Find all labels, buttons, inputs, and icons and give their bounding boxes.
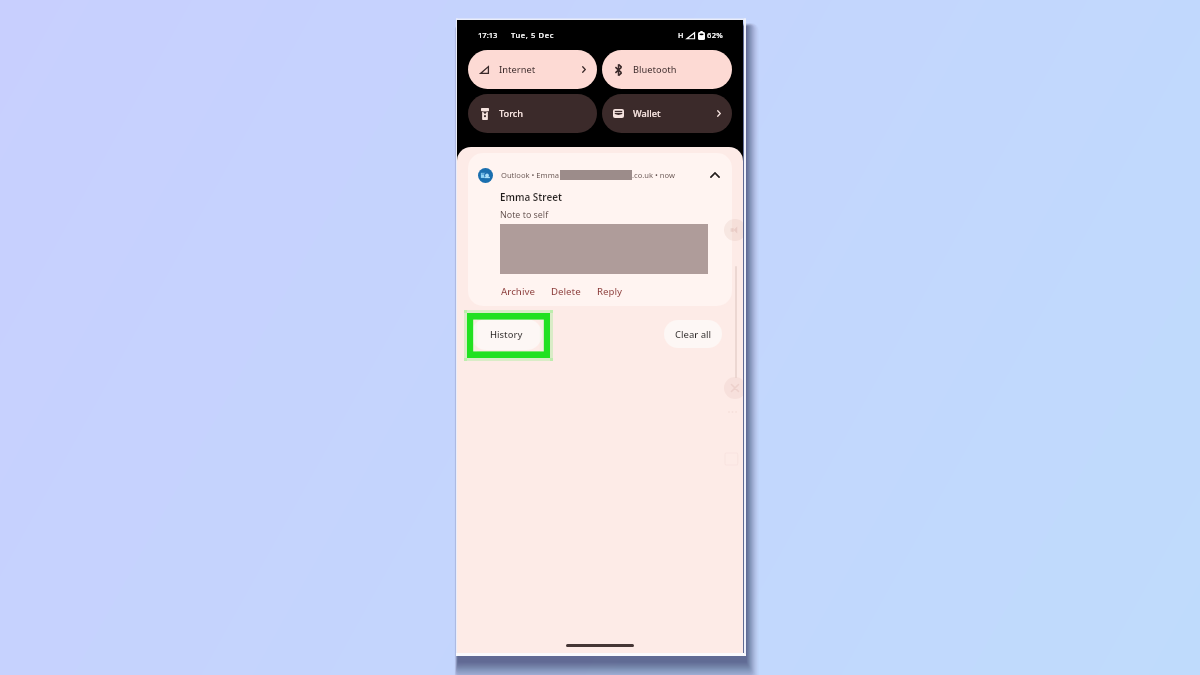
- button[interactable]: Delete: [550, 284, 582, 299]
- staticText: Emma Street: [500, 190, 563, 203]
- staticText: Reply: [597, 285, 623, 298]
- button[interactable]: Outlook • Emma: [468, 153, 732, 306]
- staticText: Tue, 5 Dec: [511, 30, 555, 40]
- button[interactable]: Internet: [468, 50, 597, 89]
- staticText: 17:13: [478, 30, 498, 40]
- staticText: Bluetooth: [633, 63, 677, 76]
- button[interactable]: Wallet: [602, 94, 732, 133]
- staticText: Note to self: [500, 208, 549, 220]
- staticText: H: [678, 30, 684, 40]
- button[interactable]: Collapse notification: [704, 164, 725, 185]
- button[interactable]: Archive: [500, 284, 537, 299]
- button[interactable]: Bluetooth: [602, 50, 732, 89]
- staticText: Archive: [501, 285, 536, 298]
- button[interactable]: History: [471, 319, 542, 350]
- staticText: 62%: [707, 30, 724, 40]
- staticText: Internet: [499, 63, 536, 76]
- button[interactable]: Torch: [468, 94, 597, 133]
- button[interactable]: Reply: [596, 284, 624, 299]
- staticText: History: [490, 328, 523, 341]
- staticText: Delete: [551, 285, 581, 298]
- staticText: Clear all: [675, 328, 712, 341]
- button[interactable]: Clear all: [664, 320, 722, 348]
- staticText: Torch: [499, 107, 524, 120]
- staticText: Wallet: [633, 107, 661, 120]
- staticText: Outlook • Emma: [501, 170, 560, 180]
- staticText: .co.uk • now: [632, 170, 675, 180]
